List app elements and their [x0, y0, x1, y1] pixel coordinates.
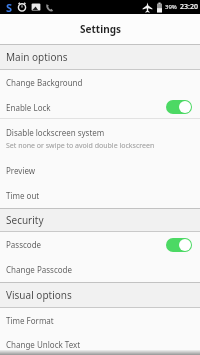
button[interactable]: Disable lockscreen system: [0, 119, 200, 158]
staticText: Change Passcode: [6, 264, 73, 275]
staticText: Main options: [6, 50, 68, 64]
button[interactable]: Time Format: [0, 308, 200, 333]
staticText: 39%: [165, 3, 177, 11]
staticText: Time Format: [6, 315, 54, 326]
staticText: Passcode: [6, 239, 42, 250]
staticText: Enable Lock: [6, 102, 51, 113]
staticText: Change Background: [6, 77, 83, 88]
button[interactable]: Main options: [0, 44, 200, 70]
staticText: S: [6, 0, 13, 14]
staticText: Disable lockscreen system: [6, 127, 105, 138]
staticText: Security: [6, 213, 44, 227]
button[interactable]: Change Unlock Text: [0, 333, 200, 355]
staticText: Change Unlock Text: [6, 339, 81, 350]
button[interactable]: Change Passcode: [0, 257, 200, 282]
button[interactable]: Time out: [0, 183, 200, 208]
staticText: 23:20: [180, 2, 198, 12]
staticText: Set none or swipe to avoid double locksc…: [6, 141, 155, 151]
button[interactable]: Visual options: [0, 282, 200, 308]
staticText: Preview: [6, 165, 36, 176]
staticText: Visual options: [6, 288, 72, 302]
button[interactable]: Enable Lock: [0, 95, 200, 119]
button[interactable]: Security: [0, 208, 200, 232]
button[interactable]: [166, 100, 192, 114]
staticText: Settings: [80, 22, 121, 36]
button[interactable]: Preview: [0, 158, 200, 183]
button[interactable]: [166, 238, 192, 252]
button[interactable]: Change Background: [0, 70, 200, 95]
button[interactable]: Passcode: [0, 232, 200, 257]
staticText: Time out: [6, 190, 40, 201]
